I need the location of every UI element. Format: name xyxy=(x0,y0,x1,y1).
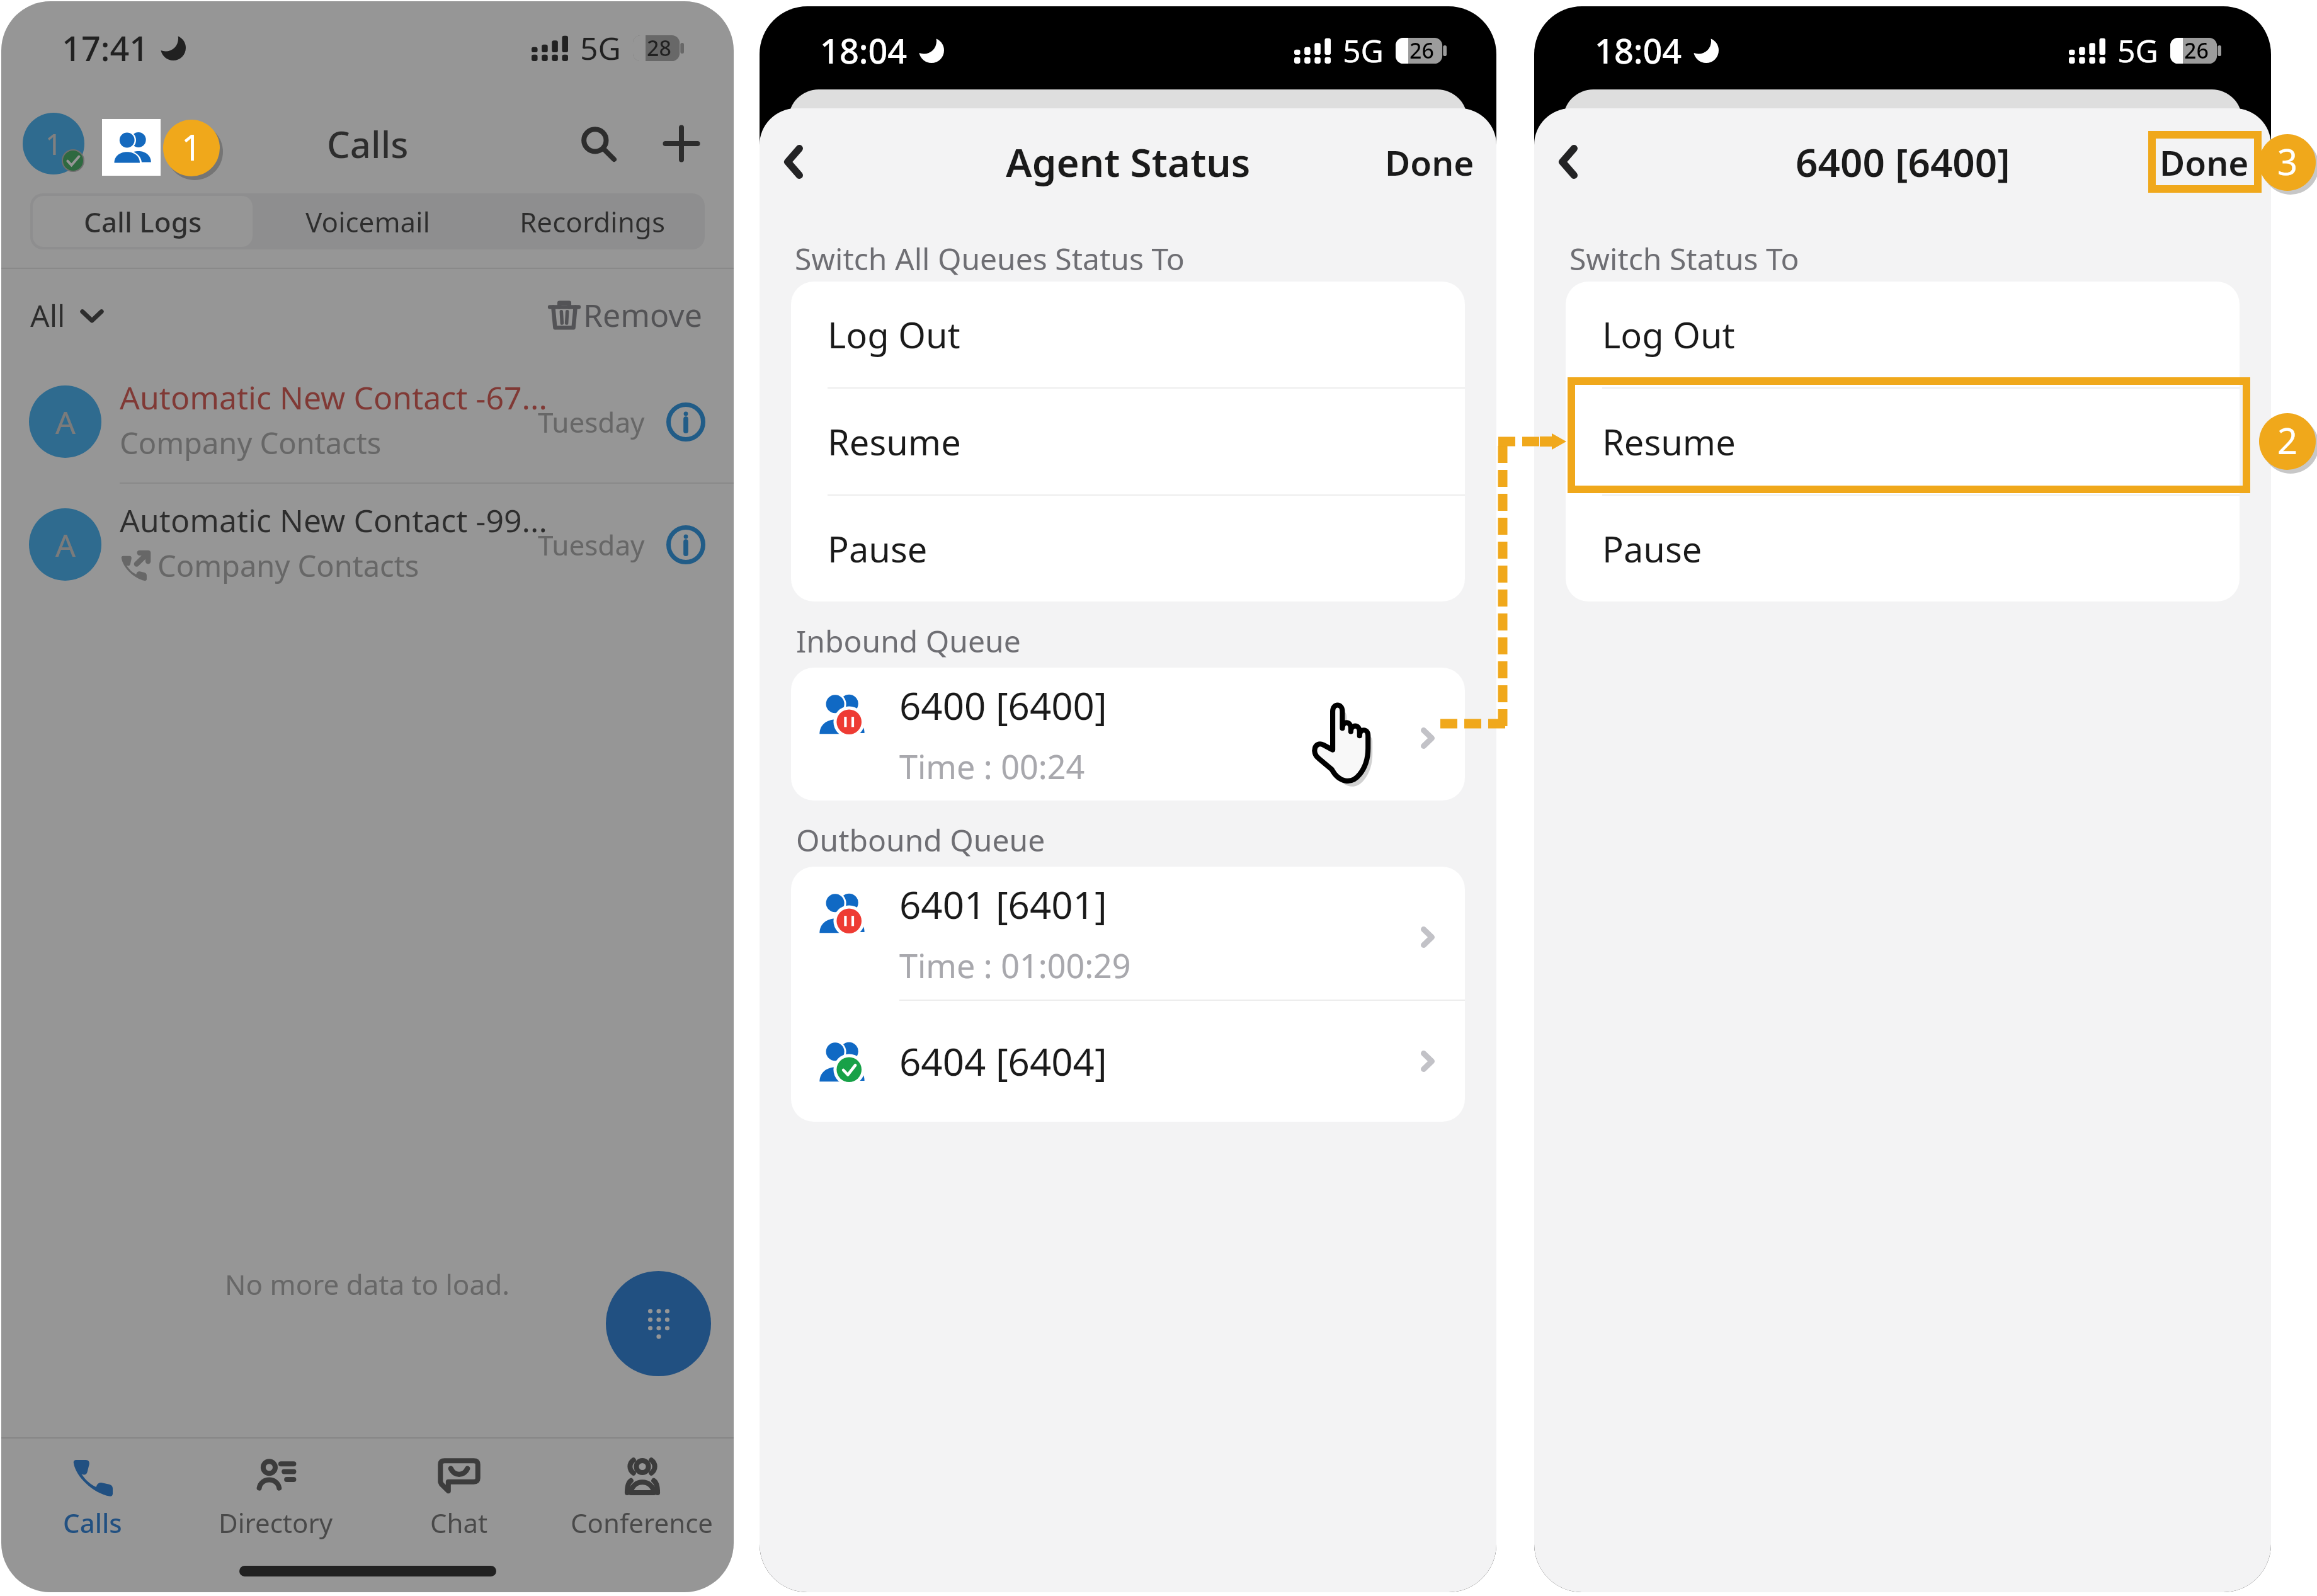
staticText: 5G xyxy=(1343,29,1384,72)
button[interactable]: Info xyxy=(661,520,710,569)
staticText: Time : 01:00:29 xyxy=(899,943,1131,988)
staticText: Switch Status To xyxy=(1569,238,1799,279)
staticText: 6401 [6401] xyxy=(899,879,1107,930)
button[interactable]: Search xyxy=(567,113,629,174)
staticText: No more data to load. xyxy=(225,1265,510,1303)
button[interactable]: Chat xyxy=(367,1439,550,1547)
staticText: Done xyxy=(1385,139,1474,186)
staticText: Log Out xyxy=(1602,311,1735,358)
staticText: 1 xyxy=(45,124,62,164)
staticText: Directory xyxy=(219,1505,333,1541)
button[interactable]: Back xyxy=(1534,128,1602,196)
staticText: Agent Status xyxy=(1006,135,1251,188)
staticText: Conference xyxy=(571,1505,714,1541)
button[interactable]: Log Out xyxy=(791,282,1465,387)
staticText: Time : 00:24 xyxy=(899,744,1085,789)
staticText: All xyxy=(30,295,65,336)
staticText: 5G xyxy=(580,26,621,69)
button[interactable]: Resume xyxy=(1566,389,2240,494)
button[interactable]: Add xyxy=(651,113,712,174)
staticText: Voicemail xyxy=(305,203,430,241)
staticText: Inbound Queue xyxy=(796,620,1021,661)
button[interactable]: Pause xyxy=(1566,496,2240,601)
staticText: 3 xyxy=(2277,137,2298,185)
staticText: Remove xyxy=(583,294,702,336)
button[interactable]: A xyxy=(1,484,734,605)
staticText: 1 xyxy=(181,123,202,171)
staticText: 18:04 xyxy=(820,27,908,74)
staticText: Company Contacts xyxy=(157,545,419,586)
staticText: 5G xyxy=(2117,29,2158,72)
staticText: Resume xyxy=(1602,418,1736,465)
staticText: Call Logs xyxy=(84,203,202,241)
staticText: 28 xyxy=(647,33,671,62)
button[interactable]: Log Out xyxy=(1566,282,2240,387)
staticText: Outbound Queue xyxy=(796,819,1045,860)
staticText: 18:04 xyxy=(1595,27,1682,74)
staticText: 17:41 xyxy=(62,25,149,71)
button[interactable]: All xyxy=(30,295,105,336)
button[interactable]: Remove xyxy=(548,294,702,336)
staticText: Done xyxy=(2160,139,2249,186)
staticText: A xyxy=(55,401,76,443)
button[interactable]: Pause xyxy=(791,496,1465,601)
staticText: 2 xyxy=(2277,416,2298,464)
button[interactable]: Back xyxy=(760,128,828,196)
button[interactable]: Dialpad xyxy=(606,1271,711,1376)
staticText: Calls xyxy=(327,119,409,169)
staticText: Recordings xyxy=(520,203,665,241)
button[interactable]: Voicemail xyxy=(255,193,480,249)
button[interactable]: 6404 [6404] xyxy=(791,1001,1465,1122)
staticText: 26 xyxy=(1409,36,1434,65)
button[interactable]: Calls xyxy=(1,1439,184,1547)
button[interactable]: Done xyxy=(2160,139,2249,186)
staticText: Tuesday xyxy=(538,403,645,441)
button[interactable]: Agent status xyxy=(102,119,161,176)
button[interactable]: Resume xyxy=(791,389,1465,494)
staticText: 6400 [6400] xyxy=(1796,135,2010,188)
button[interactable]: Done xyxy=(1385,139,1474,186)
staticText: Pause xyxy=(828,525,928,573)
staticText: Tuesday xyxy=(538,526,645,564)
staticText: Company Contacts xyxy=(120,423,382,463)
staticText: 6400 [6400] xyxy=(899,680,1107,731)
button[interactable]: Account xyxy=(23,113,84,174)
staticText: Log Out xyxy=(828,311,960,358)
button[interactable]: 6400 [6400] xyxy=(791,668,1465,801)
button[interactable]: Conference xyxy=(550,1439,734,1547)
button[interactable]: Directory xyxy=(184,1439,367,1547)
staticText: Automatic New Contact -67... xyxy=(120,376,547,419)
staticText: 6404 [6404] xyxy=(899,1035,1107,1087)
button[interactable]: Call Logs xyxy=(33,196,253,247)
staticText: Resume xyxy=(828,418,961,465)
button[interactable]: A xyxy=(1,361,734,482)
staticText: 26 xyxy=(2184,36,2209,65)
button[interactable]: Info xyxy=(661,397,710,447)
staticText: Chat xyxy=(430,1505,488,1541)
button[interactable]: 6401 [6401] xyxy=(791,867,1465,1000)
staticText: Automatic New Contact -99... xyxy=(120,499,547,542)
staticText: A xyxy=(55,523,76,566)
button[interactable]: Recordings xyxy=(480,193,705,249)
staticText: Pause xyxy=(1602,525,1702,573)
staticText: Switch All Queues Status To xyxy=(795,238,1185,279)
staticText: Calls xyxy=(63,1505,122,1541)
